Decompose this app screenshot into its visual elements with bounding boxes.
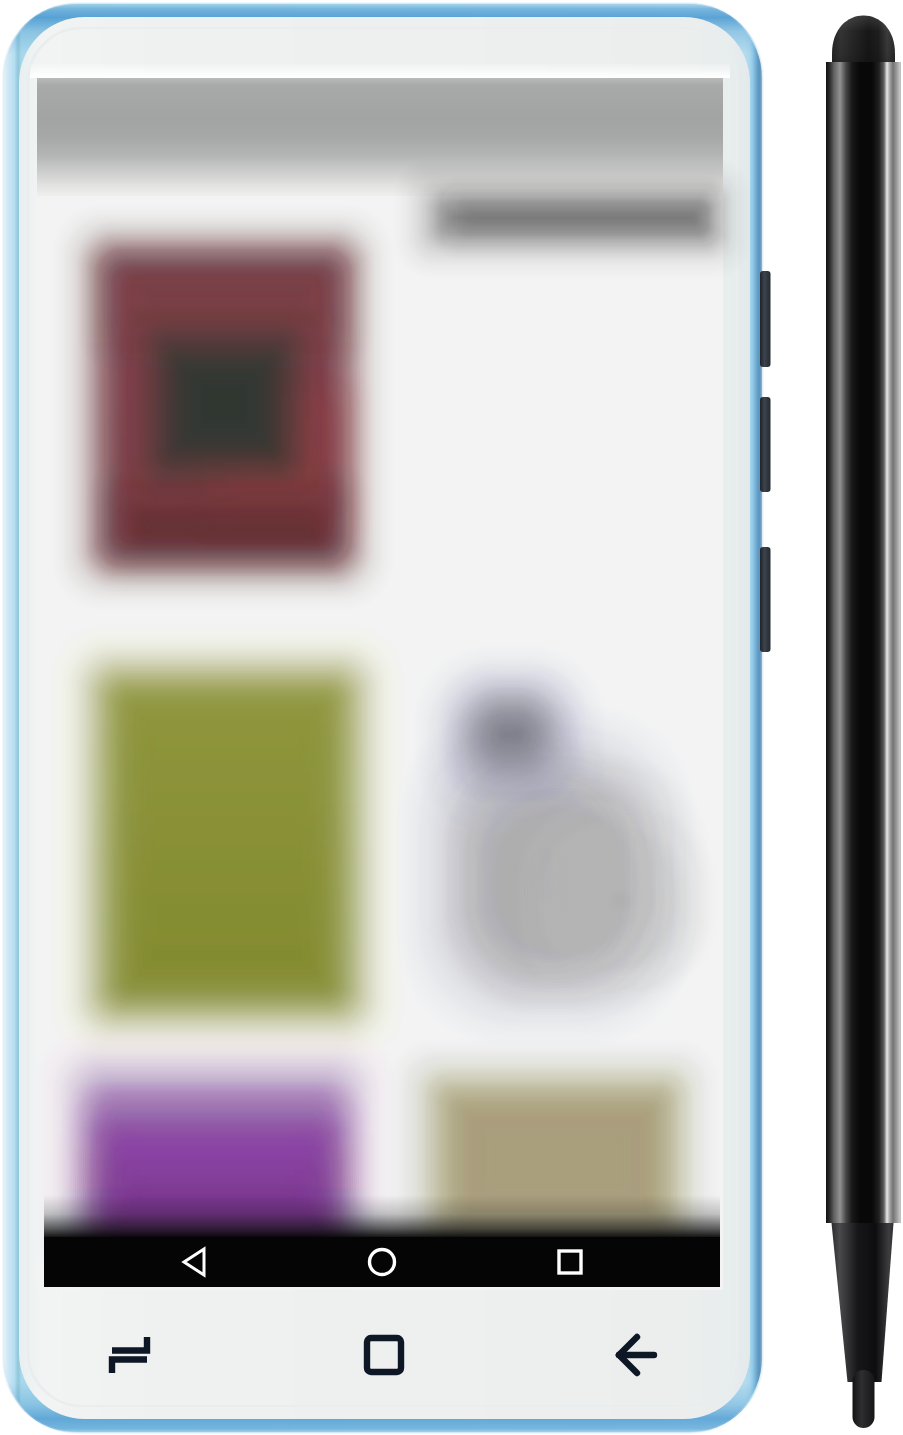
button[interactable]: Second item xyxy=(92,660,360,1026)
button[interactable]: Home xyxy=(335,1237,430,1287)
button[interactable]: Home key xyxy=(342,1315,427,1398)
button[interactable]: Recent apps xyxy=(522,1237,617,1287)
button[interactable]: Back key xyxy=(594,1315,679,1398)
button[interactable]: Third item xyxy=(82,1070,368,1237)
button[interactable]: Recents key xyxy=(90,1315,175,1398)
button[interactable]: Fourth item xyxy=(410,1074,700,1237)
button[interactable]: Power xyxy=(752,542,776,657)
button[interactable]: Volume down xyxy=(752,392,776,497)
button[interactable]: Back xyxy=(150,1237,245,1287)
button[interactable]: Headline xyxy=(430,182,706,252)
button[interactable]: Featured item xyxy=(88,242,356,572)
button[interactable]: Photo xyxy=(455,686,715,1014)
button[interactable]: Volume up xyxy=(752,266,776,372)
